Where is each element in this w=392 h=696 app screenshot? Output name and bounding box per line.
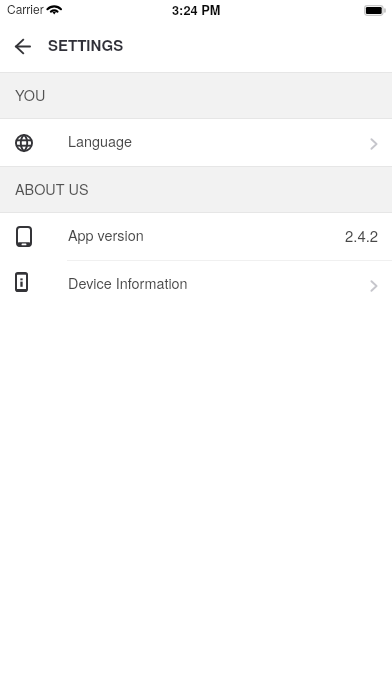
button[interactable]: Back bbox=[0, 24, 46, 72]
staticText: 3:24 PM bbox=[172, 1, 221, 19]
staticText: 2.4.2 bbox=[345, 225, 379, 246]
button[interactable]: App version bbox=[0, 213, 392, 260]
staticText: SETTINGS bbox=[48, 34, 124, 55]
staticText: Device Information bbox=[68, 272, 188, 293]
staticText: App version bbox=[68, 224, 144, 245]
staticText: ABOUT US bbox=[15, 178, 89, 199]
staticText: Carrier bbox=[7, 0, 44, 17]
button[interactable]: Device Information bbox=[0, 261, 392, 308]
button[interactable]: Language bbox=[0, 119, 392, 166]
staticText: YOU bbox=[15, 84, 46, 105]
staticText: Language bbox=[68, 130, 133, 151]
